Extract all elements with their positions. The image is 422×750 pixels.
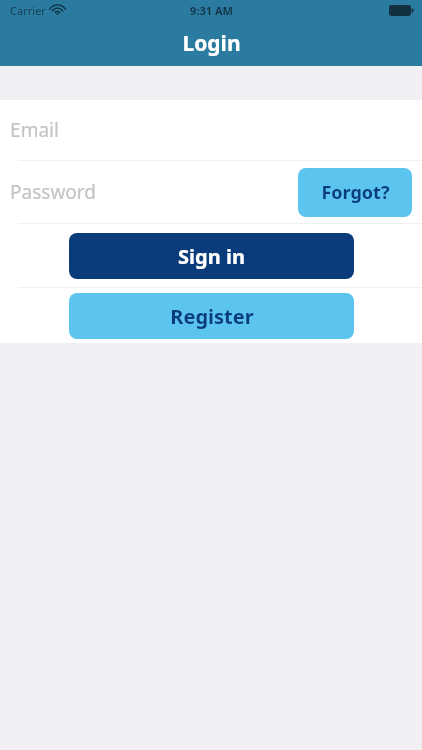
button[interactable]: Email [0, 100, 422, 160]
staticText: 9:31 AM [190, 3, 233, 18]
staticText: Login [182, 29, 241, 58]
staticText: Forgot? [321, 180, 390, 205]
staticText: Email [10, 117, 59, 143]
button[interactable]: Forgot? [298, 168, 412, 217]
staticText: Register [170, 303, 254, 330]
staticText: Sign in [178, 243, 245, 270]
button[interactable]: Password [0, 161, 422, 223]
button[interactable]: Sign in [69, 233, 354, 279]
staticText: Password [10, 179, 96, 205]
staticText: Carrier [10, 3, 46, 18]
button[interactable]: Register [69, 293, 354, 339]
